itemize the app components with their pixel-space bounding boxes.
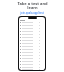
- button[interactable]: [19, 36, 45, 39]
- button[interactable]: [19, 27, 45, 30]
- button[interactable]: [19, 45, 45, 48]
- button[interactable]: [19, 33, 45, 36]
- button[interactable]: [19, 39, 45, 42]
- staticText: join.qoala.app/test: [20, 11, 44, 15]
- button[interactable]: [19, 51, 45, 54]
- button[interactable]: [19, 30, 45, 33]
- button[interactable]: [19, 69, 45, 70]
- button[interactable]: [19, 66, 45, 69]
- button[interactable]: [19, 54, 45, 57]
- button[interactable]: join.qoala.app/test: [20, 11, 44, 15]
- staticText: Take a test and learn: [17, 1, 48, 10]
- button[interactable]: [19, 63, 45, 66]
- button[interactable]: [19, 60, 45, 63]
- button[interactable]: [19, 48, 45, 51]
- button[interactable]: [19, 42, 45, 45]
- button[interactable]: [19, 57, 45, 60]
- button[interactable]: [19, 21, 45, 24]
- button[interactable]: [19, 24, 45, 27]
